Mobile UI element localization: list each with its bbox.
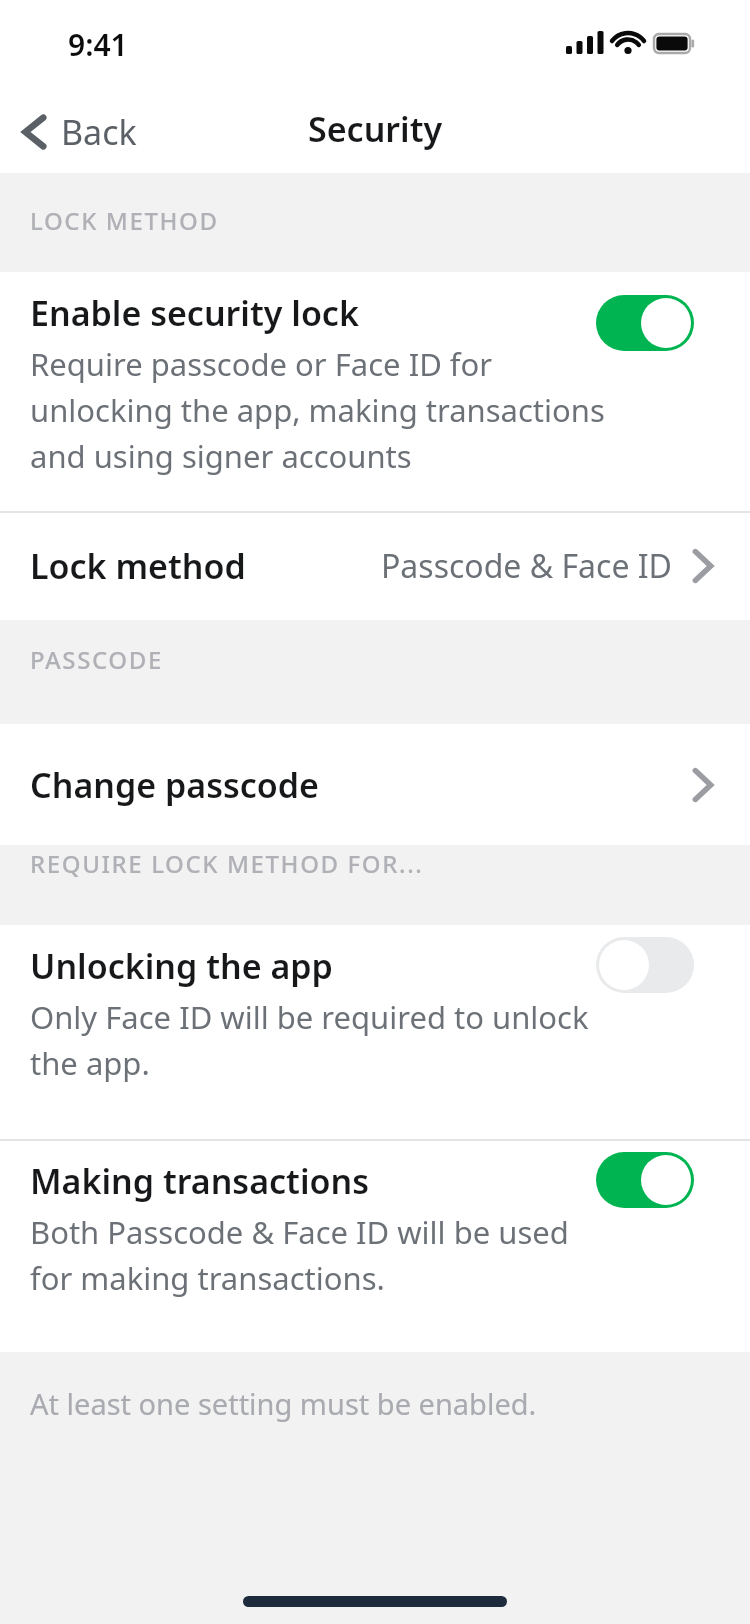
button[interactable]: Making transactions [0, 1140, 750, 1352]
staticText: Unlocking the app [30, 943, 333, 989]
button[interactable]: Enable security lock [0, 272, 750, 512]
button[interactable]: Unlocking the app [0, 925, 750, 1140]
staticText: Enable security lock [30, 290, 359, 336]
staticText: 9:41 [68, 24, 128, 65]
staticText: At least one setting must be enabled. [30, 1384, 537, 1423]
staticText: Both Passcode & Face ID will be used for… [30, 1211, 590, 1299]
staticText: Change passcode [30, 762, 319, 808]
staticText: Back [61, 109, 137, 155]
button[interactable]: Back [14, 98, 151, 166]
staticText: PASSCODE [30, 643, 163, 676]
staticText: Only Face ID will be required to unlock … [30, 996, 590, 1084]
staticText: LOCK METHOD [30, 204, 219, 237]
staticText: Require passcode or Face ID for unlockin… [30, 343, 610, 477]
staticText: Passcode & Face ID [381, 544, 672, 588]
staticText: Security [308, 106, 443, 152]
button[interactable]: Change passcode [0, 724, 750, 845]
button[interactable]: Toggle on [596, 1152, 694, 1208]
staticText: REQUIRE LOCK METHOD FOR... [30, 847, 424, 880]
button[interactable]: Lock method [0, 512, 750, 620]
staticText: Making transactions [30, 1158, 369, 1204]
staticText: Lock method [30, 543, 246, 589]
button[interactable]: Toggle on [596, 295, 694, 351]
button[interactable]: Toggle off [596, 937, 694, 993]
